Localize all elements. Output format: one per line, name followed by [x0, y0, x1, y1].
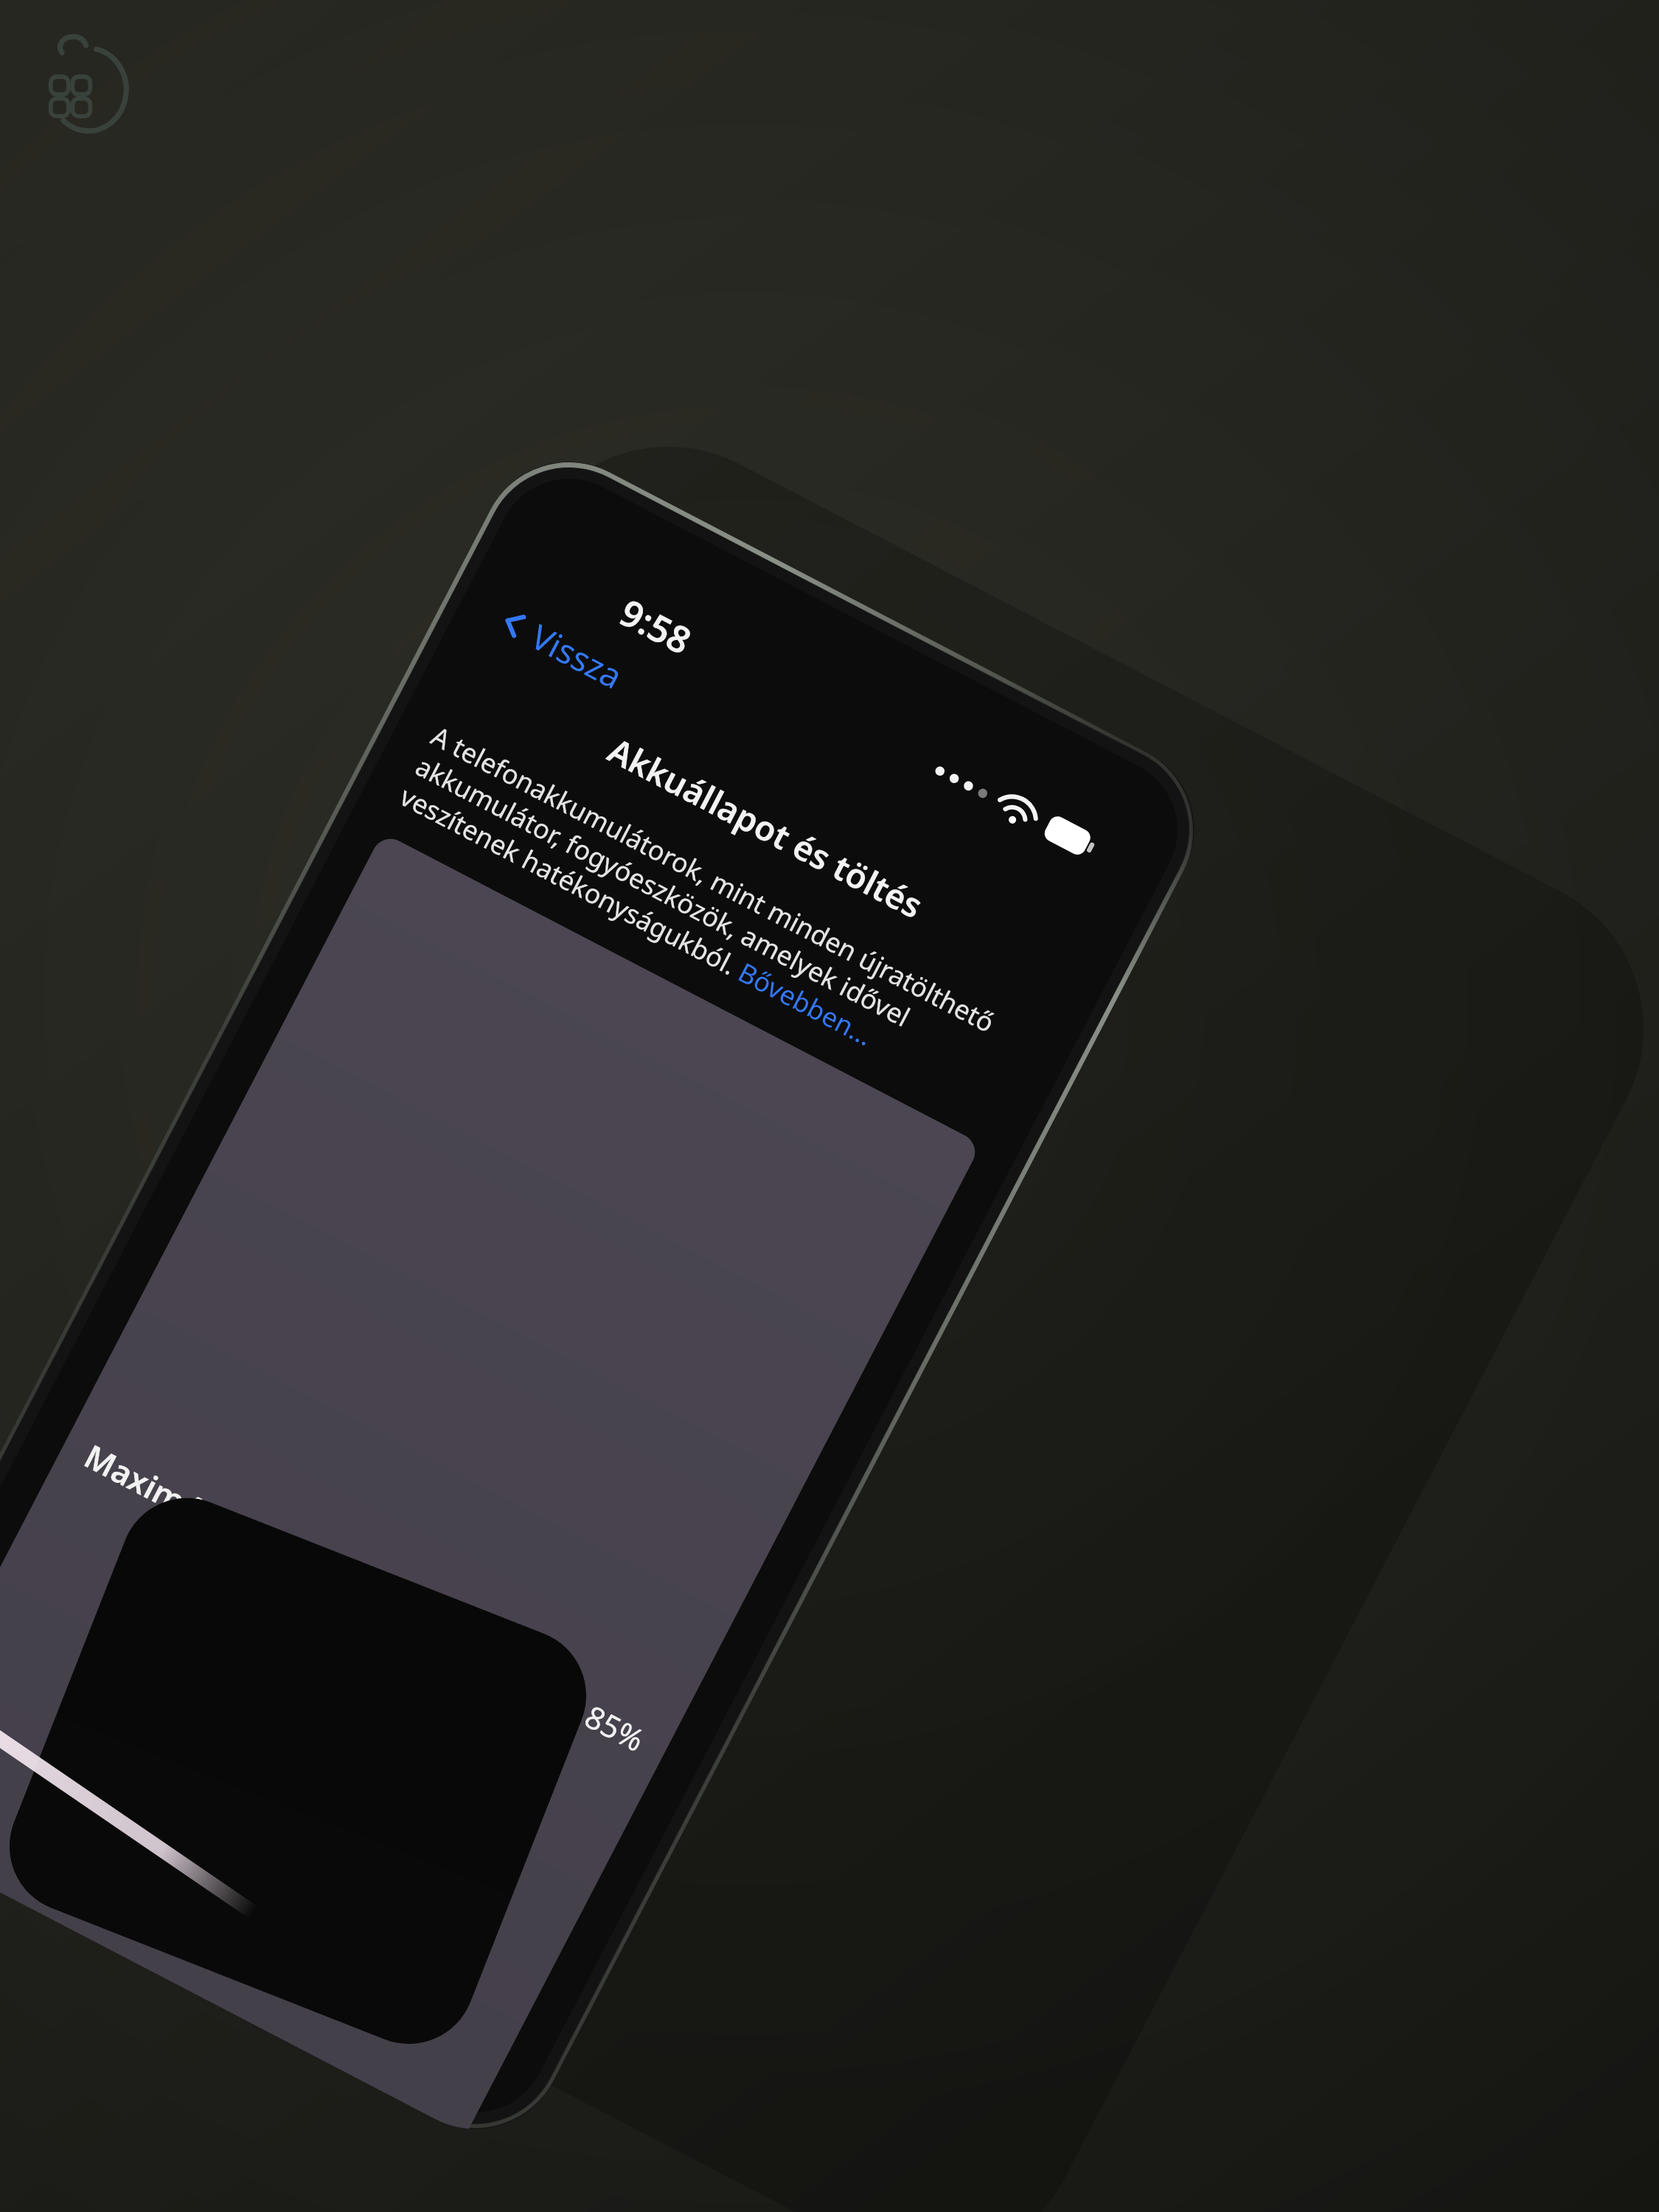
button[interactable]: Vissza — [483, 588, 640, 708]
staticText: Akkuállapot és töltés — [601, 727, 931, 928]
button[interactable]: Maximális kapacitás — [0, 832, 982, 2135]
staticText: Maximális kapacitás — [77, 1434, 382, 1621]
staticText: 9:58 — [612, 587, 700, 666]
staticText: A telefonakkumulátorok, mint minden újra… — [394, 718, 1041, 1122]
staticText: Vissza — [523, 613, 630, 699]
staticText: 85% — [578, 1695, 652, 1760]
